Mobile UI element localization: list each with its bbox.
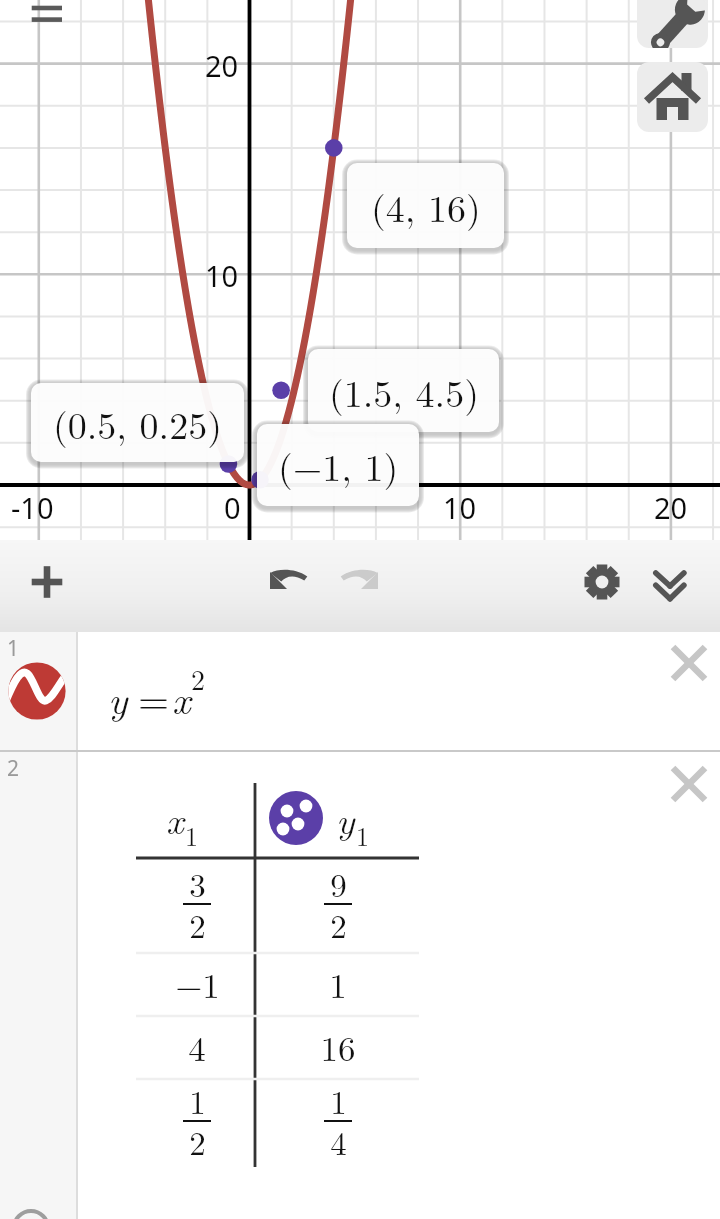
staticText: 4 — [188, 1022, 206, 1072]
staticText: 1 — [185, 817, 199, 854]
staticText: 20 — [205, 46, 239, 85]
staticText: 4 — [330, 1118, 347, 1159]
button[interactable]: Menu — [20, 0, 74, 32]
staticText: 1 — [329, 959, 347, 1009]
button[interactable]: Redo — [332, 552, 388, 608]
staticText: x — [166, 791, 184, 845]
staticText: (1.5, 4.5) — [329, 364, 479, 418]
button[interactable]: Add expression — [19, 554, 75, 610]
staticText: 0 — [224, 488, 241, 527]
staticText: (−1, 1) — [278, 438, 399, 492]
button[interactable]: Delete — [661, 635, 717, 691]
button[interactable]: Tools — [637, 0, 708, 48]
staticText: 2 — [7, 754, 20, 783]
button[interactable]: Collapse — [642, 557, 698, 613]
staticText: 2 — [191, 658, 206, 698]
staticText: 16 — [320, 1022, 356, 1072]
button[interactable]: Home — [637, 62, 708, 132]
staticText: 1 — [189, 1077, 206, 1124]
staticText: -10 — [11, 488, 54, 527]
staticText: 1 — [7, 634, 20, 663]
staticText: 3 — [189, 860, 206, 907]
staticText: (4, 16) — [371, 179, 481, 233]
staticText: −1 — [175, 959, 220, 1009]
staticText: 2 — [189, 901, 206, 942]
staticText: 1 — [356, 817, 370, 854]
button[interactable]: Undo — [260, 552, 316, 608]
staticText: 2 — [330, 901, 347, 942]
button[interactable]: Settings — [574, 554, 630, 610]
staticText: x — [172, 669, 191, 726]
staticText: 1 — [330, 1077, 347, 1124]
staticText: y — [108, 669, 128, 726]
button[interactable]: Delete — [661, 756, 717, 812]
staticText: y — [336, 791, 355, 845]
staticText: (0.5, 0.25) — [53, 396, 222, 450]
button[interactable]: Point style — [264, 786, 328, 850]
button[interactable]: 1 — [0, 632, 720, 750]
staticText: 10 — [443, 488, 477, 527]
staticText: 2 — [189, 1118, 206, 1159]
staticText: 20 — [654, 488, 688, 527]
staticText: = — [138, 669, 170, 726]
staticText: 10 — [205, 256, 239, 295]
staticText: 9 — [330, 860, 347, 907]
